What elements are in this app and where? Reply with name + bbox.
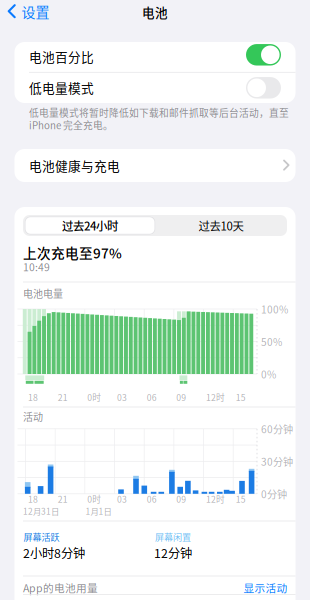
staticText: 30分钟	[261, 454, 293, 469]
staticText: 屏幕闲置	[155, 530, 191, 543]
staticText: 12时	[206, 391, 225, 403]
button[interactable]: 电池健康与充电	[14, 149, 295, 182]
staticText: App的电池用量	[23, 580, 98, 595]
staticText: 电池百分比	[29, 47, 94, 66]
staticText: 电池健康与充电	[29, 156, 120, 175]
staticText: 10:49	[23, 259, 50, 274]
staticText: 活动	[23, 409, 43, 424]
staticText: 18	[28, 493, 38, 505]
staticText: 0%	[261, 367, 276, 381]
staticText: iPhone 完全充电。	[29, 118, 113, 132]
button[interactable]: 过去24小时	[24, 216, 155, 235]
staticText: 21	[58, 493, 68, 505]
staticText: 18	[28, 391, 38, 403]
staticText: 显示活动	[243, 580, 287, 595]
staticText: 06	[147, 391, 157, 403]
staticText: 1月1日	[85, 505, 111, 517]
staticText: 12月31日	[23, 505, 59, 517]
button[interactable]: 低电量模式	[246, 77, 281, 98]
staticText: 低电量模式将暂时降低如下载和邮件抓取等后台活动，直至	[29, 105, 289, 120]
staticText: 电池电量	[23, 286, 63, 301]
staticText: 屏幕活跃	[23, 530, 59, 543]
staticText: 06	[147, 493, 157, 505]
staticText: 09	[176, 391, 186, 403]
staticText: 低电量模式	[29, 78, 94, 97]
button[interactable]: 返回设置	[7, 0, 77, 23]
button[interactable]: 显示活动	[207, 579, 287, 595]
staticText: 50%	[261, 334, 282, 349]
staticText: 0分钟	[261, 486, 287, 501]
staticText: 电池	[142, 3, 168, 21]
staticText: 过去10天	[198, 217, 243, 234]
staticText: 设置	[21, 1, 49, 22]
staticText: 0时	[87, 493, 101, 505]
staticText: 12分钟	[154, 544, 192, 561]
staticText: 03	[117, 493, 127, 505]
button[interactable]: 电池百分比	[246, 44, 281, 65]
staticText: 100%	[261, 302, 288, 316]
staticText: 21	[58, 391, 68, 403]
staticText: 12时	[206, 493, 225, 505]
button[interactable]: 过去10天	[156, 216, 286, 235]
staticText: 15	[236, 391, 246, 403]
staticText: 09	[176, 493, 186, 505]
staticText: 03	[117, 391, 127, 403]
staticText: 60分钟	[261, 421, 293, 436]
staticText: 过去24小时	[62, 217, 118, 234]
staticText: 15	[236, 493, 246, 505]
staticText: 2小时8分钟	[23, 544, 85, 561]
staticText: 上次充电至97%	[23, 243, 122, 262]
staticText: 0时	[87, 391, 101, 403]
